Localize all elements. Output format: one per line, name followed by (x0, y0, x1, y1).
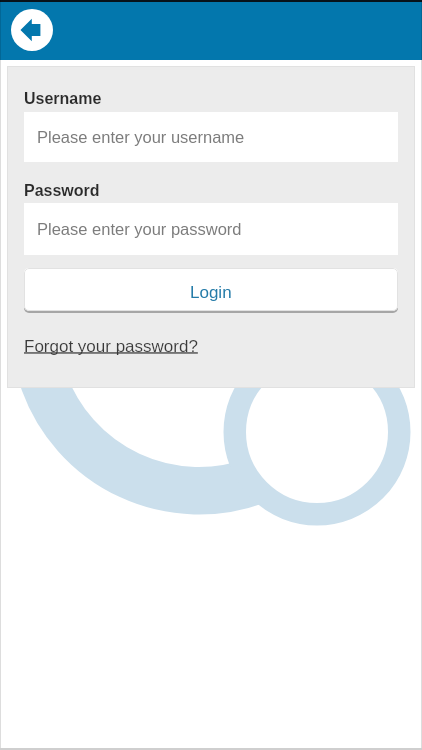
staticText: Please enter your username (37, 128, 245, 146)
button[interactable]: Login (24, 268, 398, 311)
staticText: Please enter your password (37, 220, 242, 238)
staticText: Login (190, 283, 232, 302)
staticText: Username (24, 90, 102, 108)
button[interactable]: Please enter your username (24, 112, 398, 162)
button[interactable]: Back (11, 9, 53, 51)
staticText: Password (24, 182, 100, 200)
button[interactable]: Forgot your password? (24, 337, 198, 356)
staticText: Forgot your password? (24, 337, 198, 356)
button[interactable]: Please enter your password (24, 203, 398, 255)
